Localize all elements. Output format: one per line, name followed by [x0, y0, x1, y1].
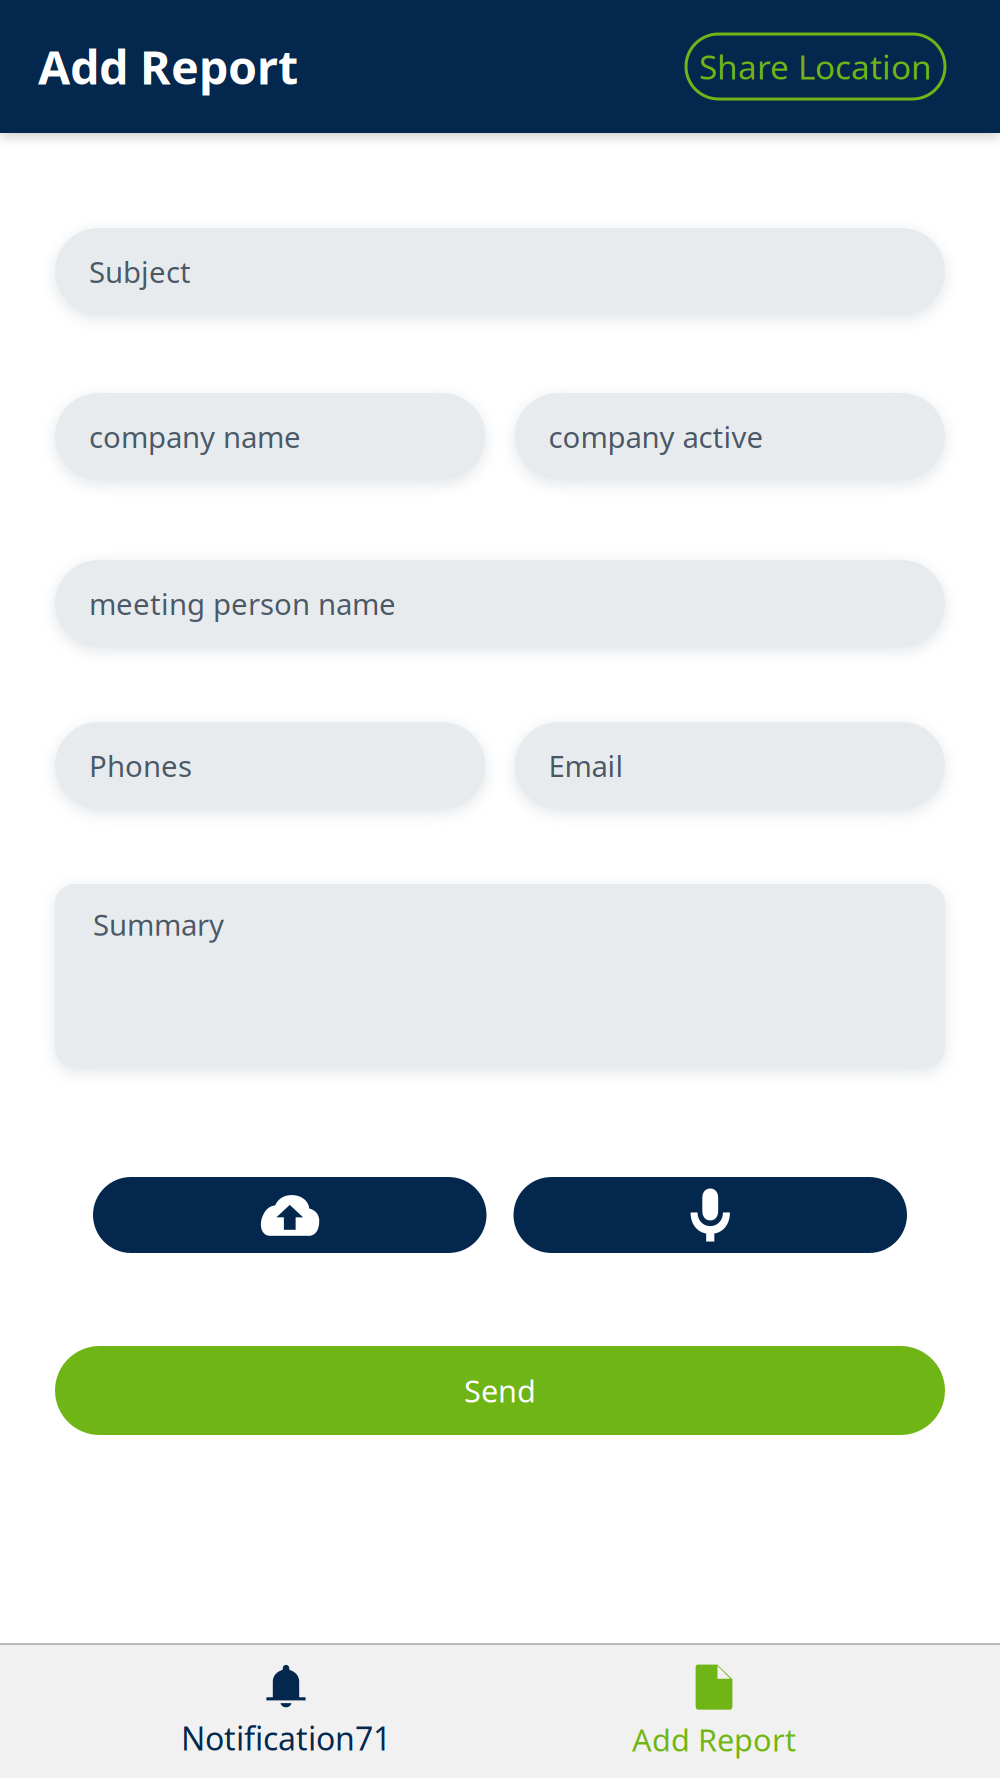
staticText: company active: [548, 417, 763, 456]
staticText: Add Report: [38, 35, 298, 97]
staticText: meeting person name: [89, 584, 396, 623]
staticText: Add Report: [632, 1719, 796, 1760]
staticText: Email: [548, 746, 623, 785]
button[interactable]: Send: [55, 1346, 945, 1435]
staticText: Send: [464, 1370, 536, 1411]
button[interactable]: Notification71: [72, 1645, 500, 1778]
staticText: Summary: [93, 905, 224, 944]
button[interactable]: Add Report: [500, 1645, 928, 1778]
staticText: Notification71: [181, 1717, 391, 1759]
staticText: Phones: [89, 746, 192, 785]
button[interactable]: Record audio: [513, 1177, 907, 1253]
staticText: Share Location: [699, 44, 932, 89]
button[interactable]: Share Location: [686, 34, 945, 99]
staticText: Subject: [89, 252, 191, 291]
button[interactable]: Upload file: [93, 1177, 486, 1253]
staticText: company name: [89, 417, 301, 456]
